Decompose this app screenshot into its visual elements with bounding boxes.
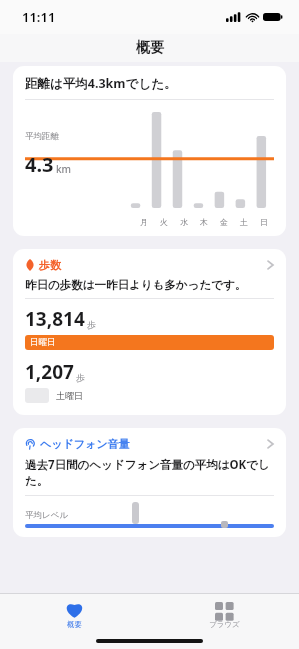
staticText: 概要 xyxy=(136,39,164,57)
staticText: 日曜日 xyxy=(30,337,56,348)
staticText: 13,814 xyxy=(25,306,85,332)
staticText: 概要 xyxy=(67,620,82,629)
staticText: 過去7日間のヘッドフォン音量の平均はOKでした。 xyxy=(25,457,274,488)
button[interactable]: 概要 xyxy=(0,594,149,649)
staticText: 金 xyxy=(220,217,228,227)
staticText: 歩数 xyxy=(39,258,61,272)
staticText: 土 xyxy=(240,217,248,227)
staticText: 距離は平均4.3kmでした。 xyxy=(25,75,177,92)
staticText: 4.3 xyxy=(25,151,54,178)
staticText: 歩 xyxy=(87,319,96,330)
staticText: 火 xyxy=(160,217,168,227)
button[interactable]: ヘッドフォン音量 xyxy=(13,428,286,537)
staticText: 木 xyxy=(200,217,208,227)
button[interactable]: 距離は平均4.3kmでした。 xyxy=(13,66,286,236)
staticText: 昨日の歩数は一昨日よりも多かったです。 xyxy=(25,278,247,292)
staticText: ヘッドフォン音量 xyxy=(40,437,130,451)
staticText: 平均距離 xyxy=(25,131,59,142)
button[interactable]: ブラウズ xyxy=(149,594,299,649)
button[interactable]: 歩数 xyxy=(13,249,286,415)
staticText: ブラウズ xyxy=(209,620,240,629)
staticText: 歩 xyxy=(76,372,85,383)
staticText: 水 xyxy=(180,217,188,227)
staticText: 平均レベル xyxy=(25,510,69,521)
staticText: 日 xyxy=(260,217,268,227)
staticText: km xyxy=(56,162,72,176)
staticText: 1,207 xyxy=(25,359,74,385)
staticText: 11:11 xyxy=(22,8,56,26)
staticText: 月 xyxy=(140,217,148,227)
staticText: 土曜日 xyxy=(56,390,83,401)
